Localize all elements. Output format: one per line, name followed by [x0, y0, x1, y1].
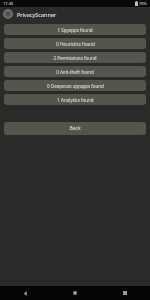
- staticText: 1 Spyapps found: [57, 27, 93, 33]
- button[interactable]: 1 Spyapps found: [4, 24, 146, 35]
- staticText: 78%: [139, 1, 147, 6]
- button[interactable]: Back: [0, 286, 50, 300]
- staticText: 17:48: [3, 1, 14, 6]
- staticText: 2 Permissions found: [53, 55, 97, 61]
- staticText: 1 Analytics found: [57, 97, 94, 103]
- button[interactable]: Recent apps: [100, 286, 150, 300]
- button[interactable]: 0 Heuristics found: [4, 38, 146, 49]
- staticText: 0 Anti-theft found: [56, 69, 94, 75]
- staticText: 0 Deepscan spyapps found: [47, 83, 104, 89]
- button[interactable]: 2 Permissions found: [4, 52, 146, 63]
- staticText: PrivacyScanner: [17, 11, 57, 18]
- button[interactable]: 0 Deepscan spyapps found: [4, 80, 146, 91]
- staticText: 0 Heuristics found: [56, 41, 95, 47]
- button[interactable]: 1 Analytics found: [4, 94, 146, 105]
- button[interactable]: Home: [50, 286, 100, 300]
- button[interactable]: 0 Anti-theft found: [4, 66, 146, 77]
- button[interactable]: Back: [4, 122, 146, 135]
- staticText: Back: [69, 125, 81, 132]
- button[interactable]: App icon: [3, 9, 13, 19]
